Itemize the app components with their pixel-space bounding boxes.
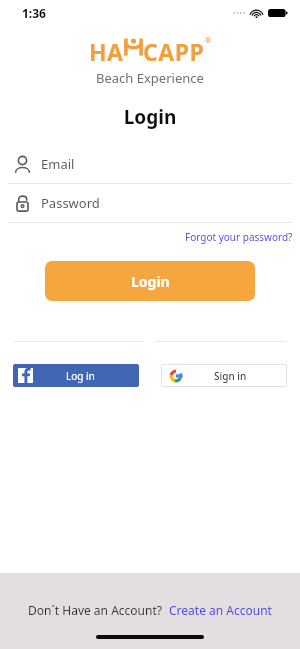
staticText: Log in [66,369,95,383]
staticText: CAPP [143,36,205,67]
other: Password field [13,194,32,213]
staticText: HA [89,36,124,67]
button[interactable]: Email field [0,145,300,184]
button[interactable]: Forgot your password? [0,230,293,244]
other: Google [169,369,183,383]
staticText: Forgot your password? [185,230,293,244]
other: Facebook [18,368,33,383]
button[interactable]: Google [161,364,287,387]
button[interactable]: Login [45,261,255,301]
other: Email field [13,155,32,174]
staticText: Login [0,104,300,130]
staticText: Login [131,272,170,291]
staticText: Beach Experience [96,69,204,87]
button[interactable]: Facebook [13,364,139,387]
staticText: Don´t Have an Account? [28,602,162,618]
staticText: ® [205,36,211,46]
staticText: Sign in [214,369,247,383]
button[interactable]: Password field [0,184,300,223]
staticText: 1:36 [22,5,46,21]
staticText: Create an Account [169,602,272,618]
staticText: Password [41,194,100,212]
staticText: Email [41,155,75,173]
button[interactable]: Create an Account [169,602,272,618]
